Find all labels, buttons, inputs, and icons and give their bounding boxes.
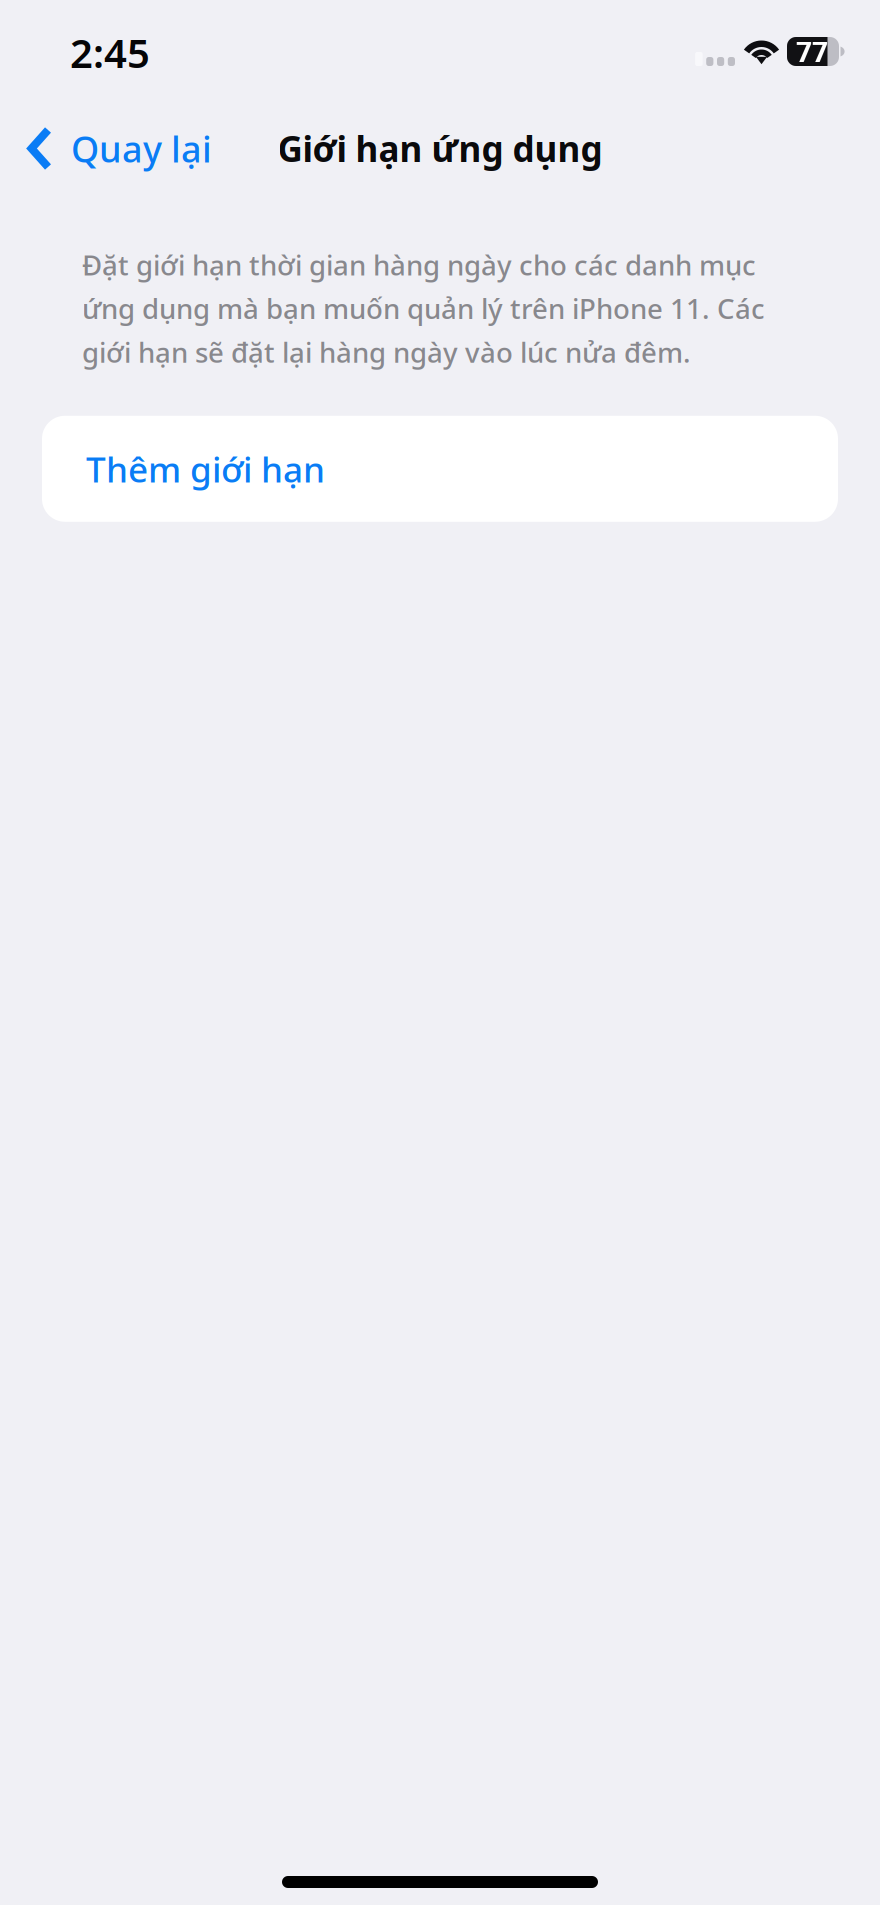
staticText: Giới hạn ứng dụng bbox=[277, 125, 602, 172]
staticText: Thêm giới hạn bbox=[86, 445, 325, 493]
staticText: 77 bbox=[796, 33, 828, 70]
button[interactable]: Thêm giới hạn bbox=[42, 416, 838, 522]
button[interactable]: Quay lại bbox=[0, 115, 230, 182]
staticText: Đặt giới hạn thời gian hàng ngày cho các… bbox=[82, 246, 765, 371]
staticText: 2:45 bbox=[70, 26, 150, 79]
staticText: Quay lại bbox=[71, 125, 212, 172]
